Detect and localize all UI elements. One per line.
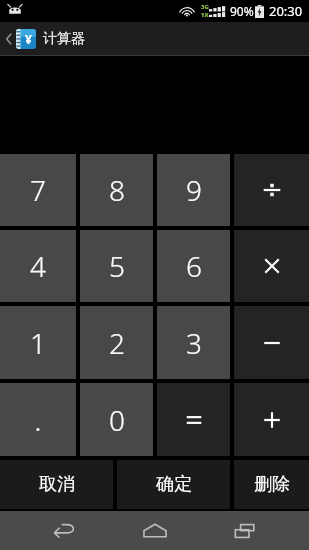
staticText: 计算器 bbox=[43, 30, 85, 48]
button[interactable]: Back bbox=[37, 511, 91, 550]
button[interactable]: 取消 bbox=[0, 460, 113, 509]
staticText: 0 bbox=[109, 401, 125, 439]
button[interactable]: 0 bbox=[80, 383, 153, 456]
button[interactable] bbox=[234, 383, 309, 456]
button[interactable]: 7 bbox=[0, 154, 76, 226]
button[interactable]: 4 bbox=[0, 230, 76, 302]
button[interactable]: 删除 bbox=[234, 460, 309, 509]
staticText: 7 bbox=[30, 171, 46, 209]
button[interactable] bbox=[234, 230, 309, 302]
button[interactable]: . bbox=[0, 383, 76, 456]
button[interactable]: Recent apps bbox=[218, 511, 272, 550]
button[interactable]: 8 bbox=[80, 154, 153, 226]
staticText: 3 bbox=[186, 324, 202, 362]
staticText: . bbox=[34, 399, 42, 440]
staticText: 90% bbox=[230, 3, 254, 19]
button[interactable]: Home bbox=[128, 511, 182, 550]
button[interactable]: 5 bbox=[80, 230, 153, 302]
button[interactable]: 2 bbox=[80, 306, 153, 379]
button[interactable]: 6 bbox=[157, 230, 230, 302]
button[interactable]: 确定 bbox=[117, 460, 230, 509]
staticText: 3G bbox=[201, 3, 209, 11]
button[interactable] bbox=[234, 306, 309, 379]
staticText: 9 bbox=[186, 171, 202, 209]
button[interactable]: ¥ bbox=[0, 22, 309, 55]
button[interactable]: 1 bbox=[0, 306, 76, 379]
staticText: 4 bbox=[30, 247, 46, 285]
button[interactable]: 9 bbox=[157, 154, 230, 226]
staticText: ¥ bbox=[25, 31, 32, 47]
staticText: 20:30 bbox=[269, 2, 303, 20]
staticText: 1 bbox=[30, 324, 46, 362]
staticText: 删除 bbox=[254, 473, 290, 496]
staticText: 6 bbox=[186, 247, 202, 285]
staticText: 取消 bbox=[39, 473, 75, 496]
staticText: 8 bbox=[109, 171, 125, 209]
staticText: 5 bbox=[109, 247, 125, 285]
button[interactable] bbox=[234, 154, 309, 226]
button[interactable] bbox=[157, 383, 230, 456]
staticText: 1X bbox=[201, 11, 209, 19]
staticText: 2 bbox=[109, 324, 125, 362]
staticText: 确定 bbox=[156, 473, 192, 496]
button[interactable]: 3 bbox=[157, 306, 230, 379]
